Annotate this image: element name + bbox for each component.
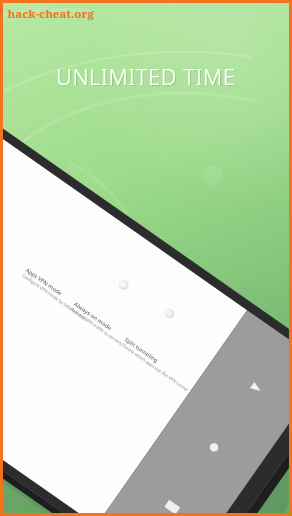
button[interactable]: Unlimited time promotional banner [0,0,292,516]
